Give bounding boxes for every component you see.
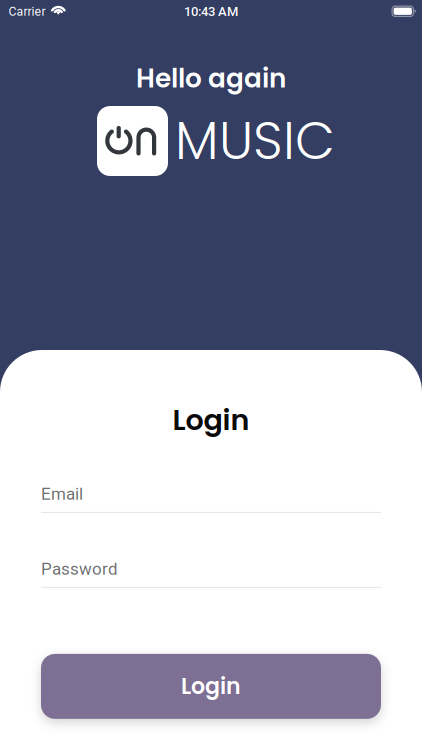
staticText: Login bbox=[172, 400, 249, 440]
button[interactable]: Login bbox=[41, 654, 381, 719]
staticText: Login bbox=[181, 671, 241, 702]
staticText: 10:43 AM bbox=[184, 4, 238, 19]
staticText: MUSIC bbox=[175, 105, 335, 177]
staticText: Hello again bbox=[136, 60, 286, 97]
staticText: Email bbox=[41, 484, 83, 504]
staticText: Password bbox=[41, 559, 118, 579]
staticText: Carrier bbox=[8, 4, 45, 19]
